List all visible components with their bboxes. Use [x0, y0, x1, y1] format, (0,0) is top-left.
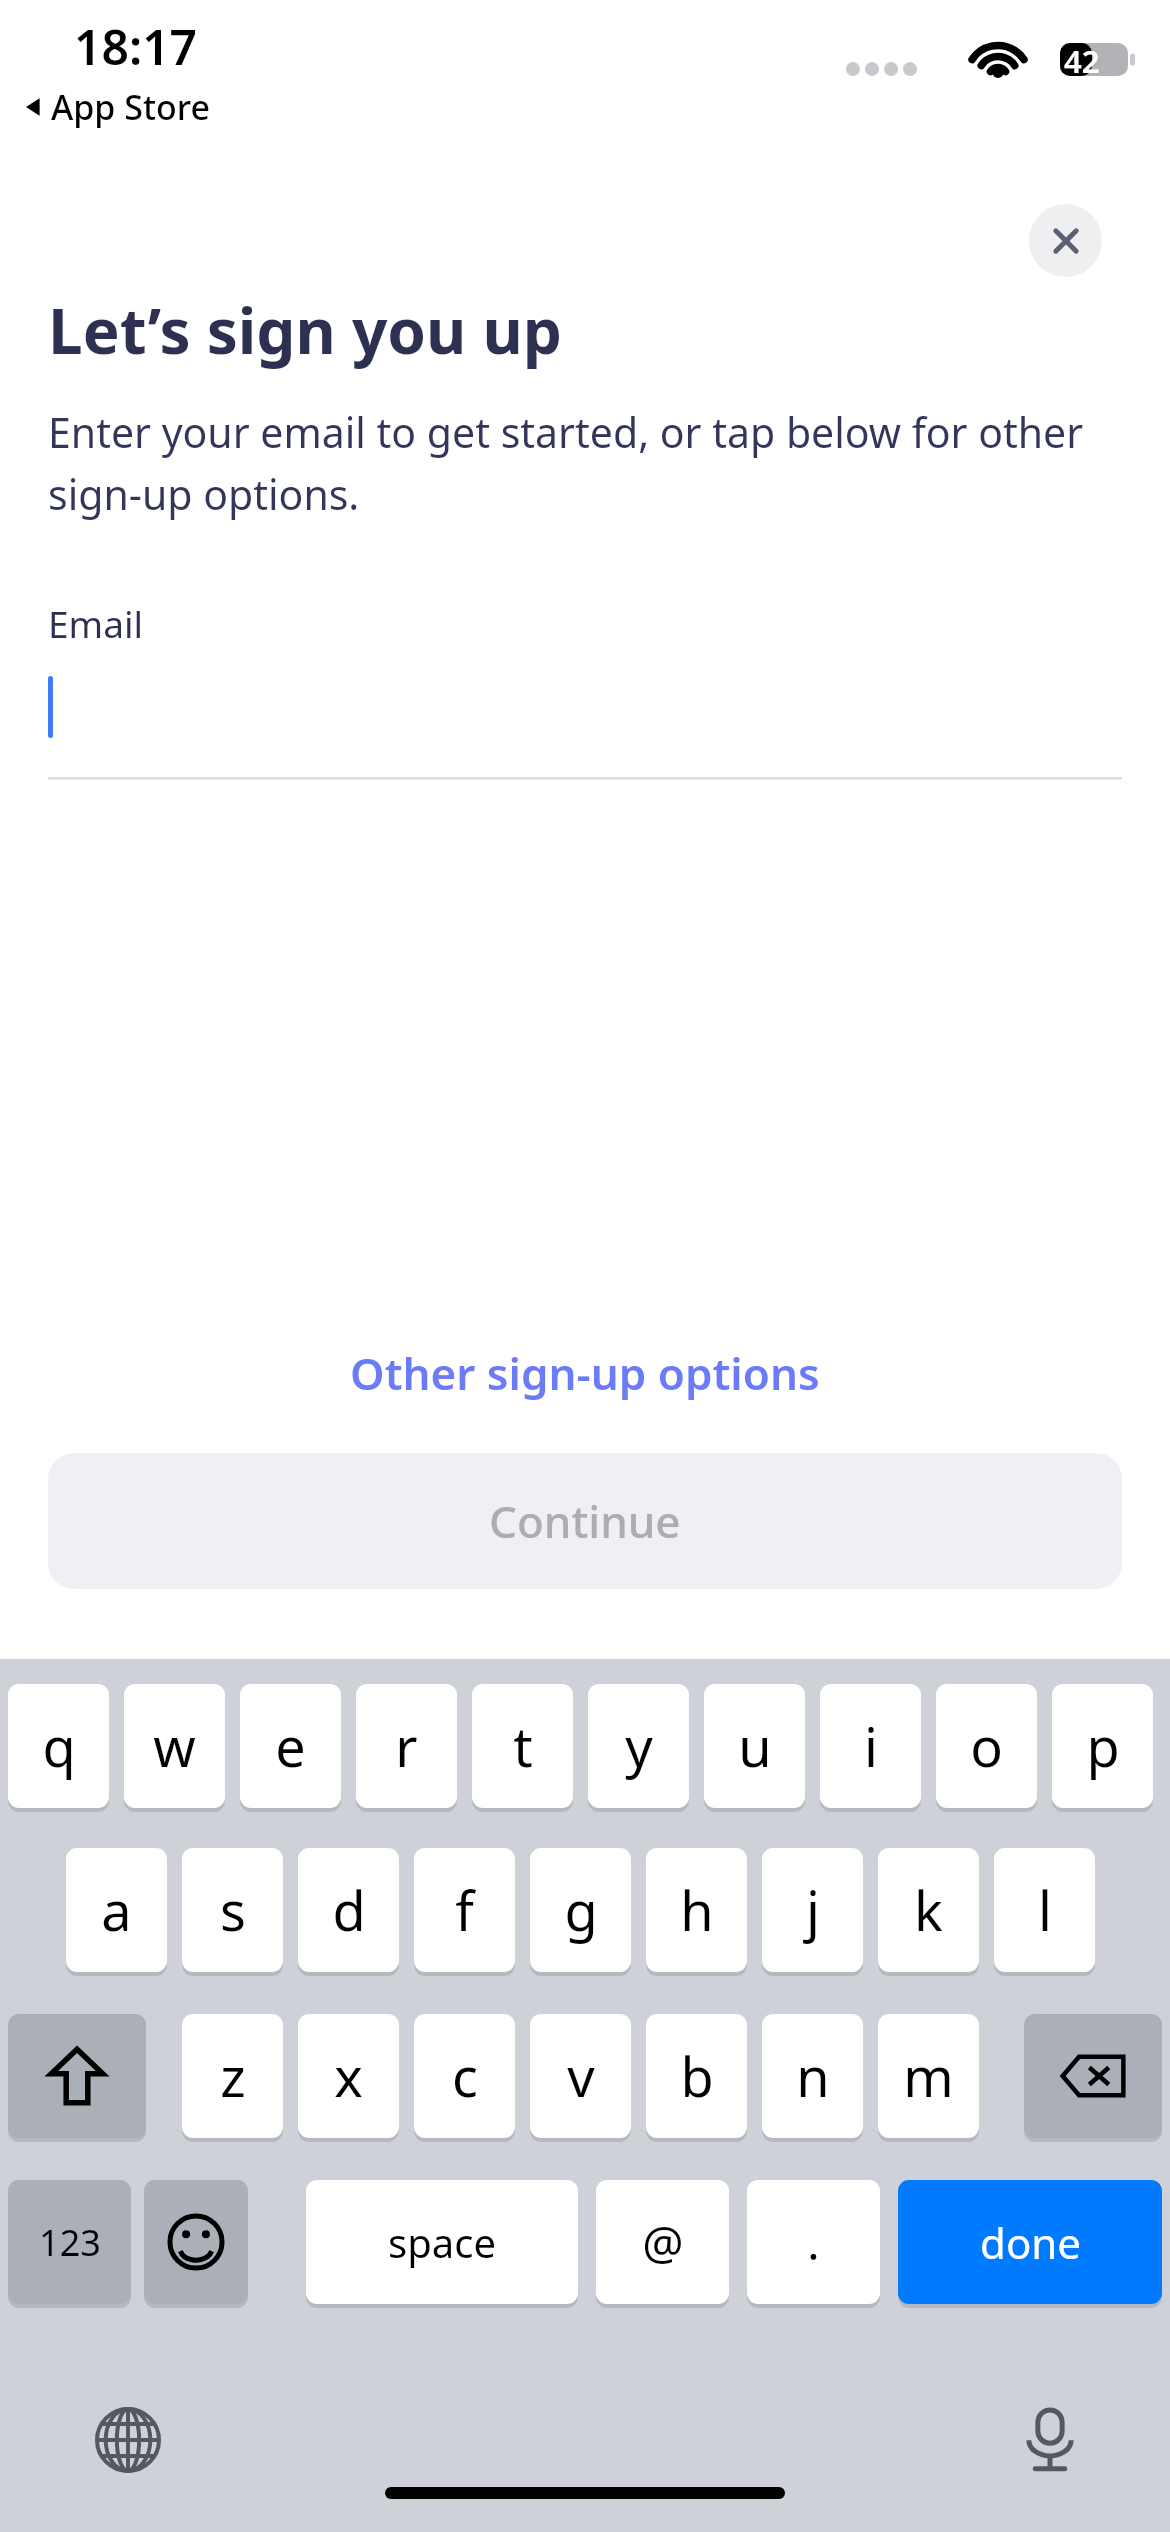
staticText: Continue	[489, 1491, 681, 1551]
staticText: Let’s sign you up	[48, 288, 562, 372]
button[interactable]: d	[298, 1848, 399, 1972]
staticText: App Store	[51, 84, 210, 130]
button[interactable]: n	[762, 2014, 863, 2138]
button[interactable]: 123	[8, 2180, 131, 2304]
staticText: s	[220, 1873, 246, 1947]
staticText: p	[1086, 1709, 1120, 1783]
button[interactable]: j	[762, 1848, 863, 1972]
button[interactable]: u	[704, 1684, 805, 1808]
button[interactable]: .	[747, 2180, 880, 2304]
staticText: u	[738, 1709, 772, 1783]
button[interactable]: App Store	[22, 82, 212, 132]
staticText: q	[42, 1709, 76, 1783]
button[interactable]: g	[530, 1848, 631, 1972]
staticText: j	[806, 1873, 820, 1947]
staticText: o	[970, 1709, 1003, 1783]
button[interactable]: v	[530, 2014, 631, 2138]
staticText: @	[642, 2211, 684, 2274]
staticText: Other sign-up options	[350, 1343, 820, 1403]
staticText: h	[680, 1873, 714, 1947]
staticText: k	[914, 1873, 943, 1947]
staticText: t	[513, 1709, 533, 1783]
staticText: w	[153, 1709, 196, 1783]
staticText: a	[101, 1873, 132, 1947]
staticText: z	[220, 2039, 246, 2113]
staticText: space	[388, 2215, 496, 2269]
staticText: l	[1038, 1873, 1052, 1947]
button[interactable]: l	[994, 1848, 1095, 1972]
staticText: y	[625, 1709, 653, 1783]
staticText: 123	[39, 2218, 101, 2267]
button[interactable]: q	[8, 1684, 109, 1808]
button[interactable]: w	[124, 1684, 225, 1808]
button[interactable]: y	[588, 1684, 689, 1808]
staticText: b	[680, 2039, 714, 2113]
button[interactable]: x	[298, 2014, 399, 2138]
button[interactable]: o	[936, 1684, 1037, 1808]
button[interactable]: t	[472, 1684, 573, 1808]
button[interactable]: p	[1052, 1684, 1153, 1808]
button[interactable]: s	[182, 1848, 283, 1972]
button[interactable]: r	[356, 1684, 457, 1808]
button[interactable]: i	[820, 1684, 921, 1808]
button[interactable]: b	[646, 2014, 747, 2138]
button[interactable]: Dictation	[1000, 2390, 1100, 2490]
staticText: n	[796, 2039, 830, 2113]
button[interactable]: e	[240, 1684, 341, 1808]
staticText: 42	[1064, 40, 1100, 82]
staticText: f	[455, 1873, 474, 1947]
button[interactable]: f	[414, 1848, 515, 1972]
staticText: d	[332, 1873, 366, 1947]
button[interactable]	[48, 656, 1122, 780]
button[interactable]: Backspace	[1024, 2014, 1162, 2138]
button[interactable]: @	[596, 2180, 729, 2304]
staticText: g	[564, 1873, 598, 1947]
staticText: Email	[48, 598, 144, 648]
staticText: v	[567, 2039, 595, 2113]
staticText: m	[903, 2039, 954, 2113]
button[interactable]: k	[878, 1848, 979, 1972]
staticText: .	[807, 2211, 820, 2274]
button[interactable]: a	[66, 1848, 167, 1972]
staticText: c	[452, 2039, 478, 2113]
staticText: e	[275, 1709, 306, 1783]
staticText: 18:17	[74, 14, 198, 79]
staticText: Enter your email to get started, or tap …	[48, 404, 1110, 522]
button[interactable]: z	[182, 2014, 283, 2138]
button[interactable]: Shift	[8, 2014, 146, 2138]
button[interactable]: Other sign-up options	[0, 1330, 1170, 1416]
staticText: i	[864, 1709, 878, 1783]
button[interactable]: Close	[1029, 204, 1102, 277]
button[interactable]: m	[878, 2014, 979, 2138]
button[interactable]: done	[898, 2180, 1162, 2304]
button[interactable]: space	[306, 2180, 578, 2304]
button[interactable]: Emoji	[144, 2180, 248, 2304]
button[interactable]: Change keyboard language	[78, 2390, 178, 2490]
staticText: done	[980, 2214, 1081, 2271]
button[interactable]: h	[646, 1848, 747, 1972]
button[interactable]: Continue	[48, 1453, 1122, 1589]
staticText: x	[334, 2039, 363, 2113]
button[interactable]: c	[414, 2014, 515, 2138]
staticText: r	[395, 1709, 418, 1783]
